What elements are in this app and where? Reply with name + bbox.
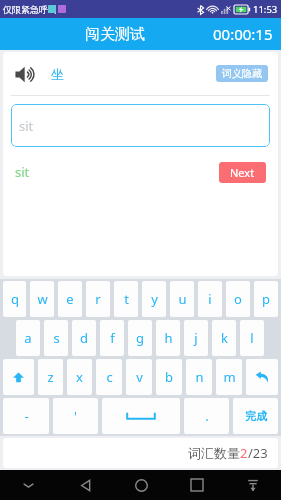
staticText: 2 bbox=[240, 444, 248, 462]
button[interactable]: n bbox=[186, 359, 212, 395]
button[interactable]: z bbox=[38, 359, 63, 395]
staticText: x bbox=[76, 368, 83, 386]
staticText: p bbox=[262, 290, 270, 308]
staticText: 词义隐藏 bbox=[222, 67, 262, 80]
button[interactable]: Download bbox=[225, 470, 281, 500]
button[interactable]: Back bbox=[57, 470, 113, 500]
button[interactable]: 词义隐藏 bbox=[216, 65, 268, 82]
button[interactable]: g bbox=[128, 320, 152, 356]
staticText: g bbox=[136, 329, 144, 347]
button[interactable]: p bbox=[254, 281, 278, 317]
staticText: 仅限紧急呼叫 bbox=[3, 4, 57, 15]
staticText: i bbox=[208, 290, 212, 308]
button[interactable]: h bbox=[156, 320, 180, 356]
staticText: 00:00:15 bbox=[213, 24, 273, 44]
staticText: q bbox=[11, 290, 19, 308]
button[interactable]: w bbox=[30, 281, 54, 317]
button[interactable]: x bbox=[67, 359, 92, 395]
staticText: 11:53 bbox=[253, 3, 278, 16]
staticText: /23 bbox=[248, 444, 268, 462]
button[interactable]: Shift bbox=[3, 359, 34, 395]
staticText: 坐 bbox=[51, 66, 64, 82]
button[interactable]: f bbox=[100, 320, 124, 356]
button[interactable]: s bbox=[44, 320, 68, 356]
button[interactable]: j bbox=[184, 320, 208, 356]
button[interactable]: l bbox=[240, 320, 264, 356]
button[interactable]: Recents bbox=[169, 470, 225, 500]
staticText: u bbox=[178, 290, 187, 308]
button[interactable]: ' bbox=[53, 398, 98, 434]
staticText: y bbox=[151, 290, 158, 308]
button[interactable]: m bbox=[216, 359, 242, 395]
staticText: a bbox=[24, 329, 32, 347]
button[interactable]: . bbox=[184, 398, 229, 434]
staticText: n bbox=[195, 368, 204, 386]
button[interactable]: k bbox=[212, 320, 236, 356]
button[interactable]: d bbox=[72, 320, 96, 356]
button[interactable]: 完成 bbox=[233, 398, 278, 434]
staticText: h bbox=[164, 329, 173, 347]
staticText: z bbox=[47, 368, 54, 386]
button[interactable]: a bbox=[16, 320, 40, 356]
button[interactable]: i bbox=[198, 281, 222, 317]
button[interactable]: e bbox=[58, 281, 82, 317]
button[interactable]: - bbox=[3, 398, 49, 434]
staticText: 闯关测试 bbox=[85, 25, 145, 44]
button[interactable]: Hide keyboard bbox=[0, 470, 57, 500]
button[interactable]: v bbox=[126, 359, 152, 395]
staticText: o bbox=[234, 290, 242, 308]
staticText: m bbox=[223, 368, 236, 386]
button[interactable]: y bbox=[142, 281, 166, 317]
button[interactable]: o bbox=[226, 281, 250, 317]
button[interactable]: Space bbox=[102, 398, 180, 434]
staticText: l bbox=[250, 329, 254, 347]
button[interactable]: q bbox=[3, 281, 26, 317]
staticText: sit bbox=[19, 117, 34, 135]
staticText: k bbox=[221, 329, 228, 347]
staticText: . bbox=[205, 407, 209, 425]
button[interactable]: Home bbox=[113, 470, 169, 500]
staticText: Next bbox=[230, 165, 255, 180]
staticText: e bbox=[66, 290, 74, 308]
staticText: f bbox=[110, 329, 115, 347]
staticText: b bbox=[165, 368, 173, 386]
staticText: j bbox=[194, 329, 198, 347]
staticText: - bbox=[24, 407, 29, 425]
staticText: t bbox=[124, 290, 129, 308]
button[interactable]: sit bbox=[11, 104, 270, 147]
button[interactable]: r bbox=[86, 281, 110, 317]
staticText: ' bbox=[74, 407, 77, 425]
button[interactable]: t bbox=[114, 281, 138, 317]
staticText: s bbox=[53, 329, 60, 347]
button[interactable]: u bbox=[170, 281, 194, 317]
button[interactable]: Next bbox=[219, 162, 266, 183]
button[interactable]: c bbox=[96, 359, 122, 395]
staticText: r bbox=[95, 290, 101, 308]
button[interactable]: b bbox=[156, 359, 182, 395]
button[interactable]: Play pronunciation bbox=[13, 61, 39, 87]
staticText: w bbox=[37, 290, 48, 308]
staticText: c bbox=[106, 368, 113, 386]
button[interactable]: Backspace bbox=[246, 359, 278, 395]
staticText: 词汇数量 bbox=[188, 445, 240, 461]
staticText: d bbox=[80, 329, 88, 347]
staticText: v bbox=[136, 368, 143, 386]
staticText: sit bbox=[15, 163, 30, 181]
staticText: 完成 bbox=[245, 409, 267, 423]
